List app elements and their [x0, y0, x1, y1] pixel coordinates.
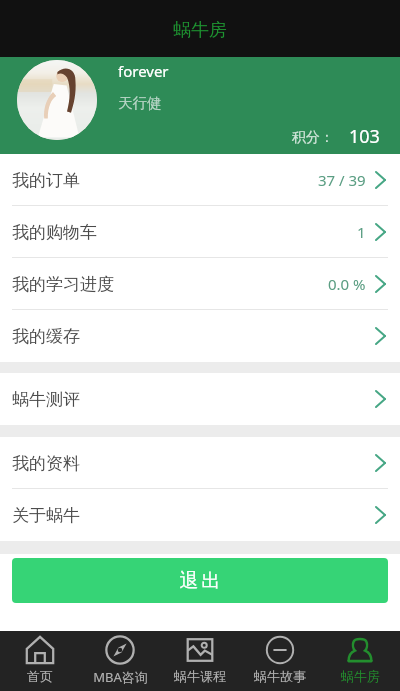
staticText: 天行健: [118, 94, 162, 112]
staticText: 退出: [178, 569, 222, 593]
staticText: 蜗牛课程: [174, 668, 226, 684]
staticText: 蜗牛房: [173, 19, 227, 42]
button[interactable]: 我的学习进度: [0, 258, 400, 310]
staticText: 0.0 %: [328, 274, 366, 294]
staticText: MBA咨询: [93, 668, 148, 686]
button[interactable]: 蜗牛测评: [0, 373, 400, 425]
staticText: 我的学习进度: [12, 274, 114, 295]
staticText: 蜗牛房: [341, 668, 380, 684]
button[interactable]: 蜗牛课程: [160, 631, 240, 691]
button[interactable]: 蜗牛房: [320, 631, 400, 691]
button[interactable]: 我的资料: [0, 437, 400, 489]
button[interactable]: 退出: [12, 558, 388, 603]
staticText: forever: [118, 61, 169, 81]
button[interactable]: 我的缓存: [0, 310, 400, 362]
staticText: 我的缓存: [12, 326, 80, 347]
staticText: 首页: [27, 668, 53, 684]
staticText: 我的购物车: [12, 222, 97, 243]
staticText: 1: [357, 222, 366, 242]
staticText: 积分：: [292, 129, 334, 147]
button[interactable]: 我的订单: [0, 154, 400, 206]
button[interactable]: 我的购物车: [0, 206, 400, 258]
button[interactable]: 首页: [0, 631, 80, 691]
staticText: 37 / 39: [318, 170, 366, 190]
staticText: 关于蜗牛: [12, 505, 80, 526]
button[interactable]: 蜗牛故事: [240, 631, 320, 691]
button[interactable]: 关于蜗牛: [0, 489, 400, 541]
staticText: 我的资料: [12, 453, 80, 474]
staticText: 我的订单: [12, 170, 80, 191]
staticText: 103: [349, 124, 380, 149]
staticText: 蜗牛故事: [254, 668, 306, 684]
button[interactable]: MBA咨询: [80, 631, 160, 691]
staticText: 蜗牛测评: [12, 389, 80, 410]
